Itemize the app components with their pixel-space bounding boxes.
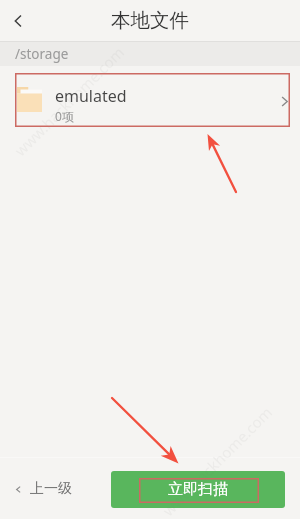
- staticText: 上一级: [30, 480, 72, 498]
- staticText: 立即扫描: [168, 480, 228, 499]
- staticText: 0项: [55, 108, 74, 124]
- staticText: www.hackhome.com: [158, 402, 276, 519]
- staticText: /storage: [15, 45, 69, 63]
- staticText: www.hackhome.com: [10, 42, 128, 160]
- button[interactable]: 立即扫描: [111, 471, 285, 508]
- staticText: 本地文件: [111, 8, 189, 33]
- button[interactable]: Back: [0, 0, 38, 41]
- button[interactable]: 上一级: [0, 469, 84, 509]
- staticText: emulated: [55, 85, 127, 107]
- button[interactable]: emulated: [0, 73, 300, 127]
